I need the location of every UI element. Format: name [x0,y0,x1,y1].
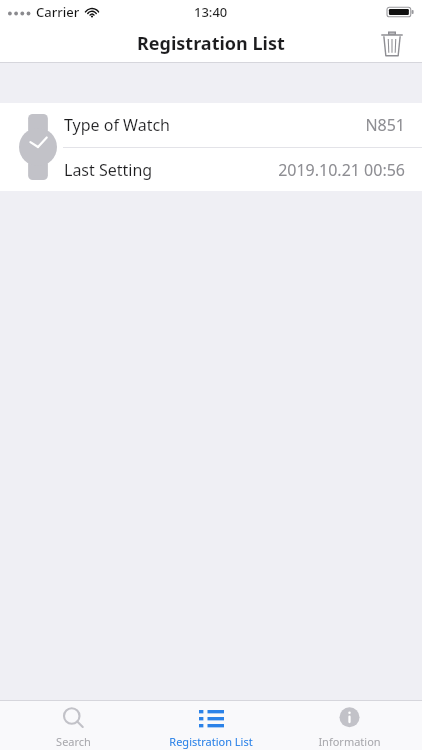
button[interactable]: Search [8,705,138,750]
staticText: Registration List [169,734,253,749]
button[interactable]: Delete [370,24,414,63]
staticText: Last Setting [64,159,153,181]
staticText: N851 [365,114,405,136]
staticText: Registration List [137,31,285,56]
staticText: 2019.10.21 00:56 [278,159,405,181]
button[interactable]: Type of Watch [0,103,422,147]
button[interactable]: Last Setting [0,148,422,191]
staticText: Search [56,734,91,749]
staticText: Information [318,734,381,749]
staticText: Type of Watch [64,114,170,136]
button[interactable]: Registration List [146,705,276,750]
button[interactable]: Information [284,705,414,750]
staticText: Carrier [36,3,80,21]
staticText: 13:40 [194,3,228,21]
